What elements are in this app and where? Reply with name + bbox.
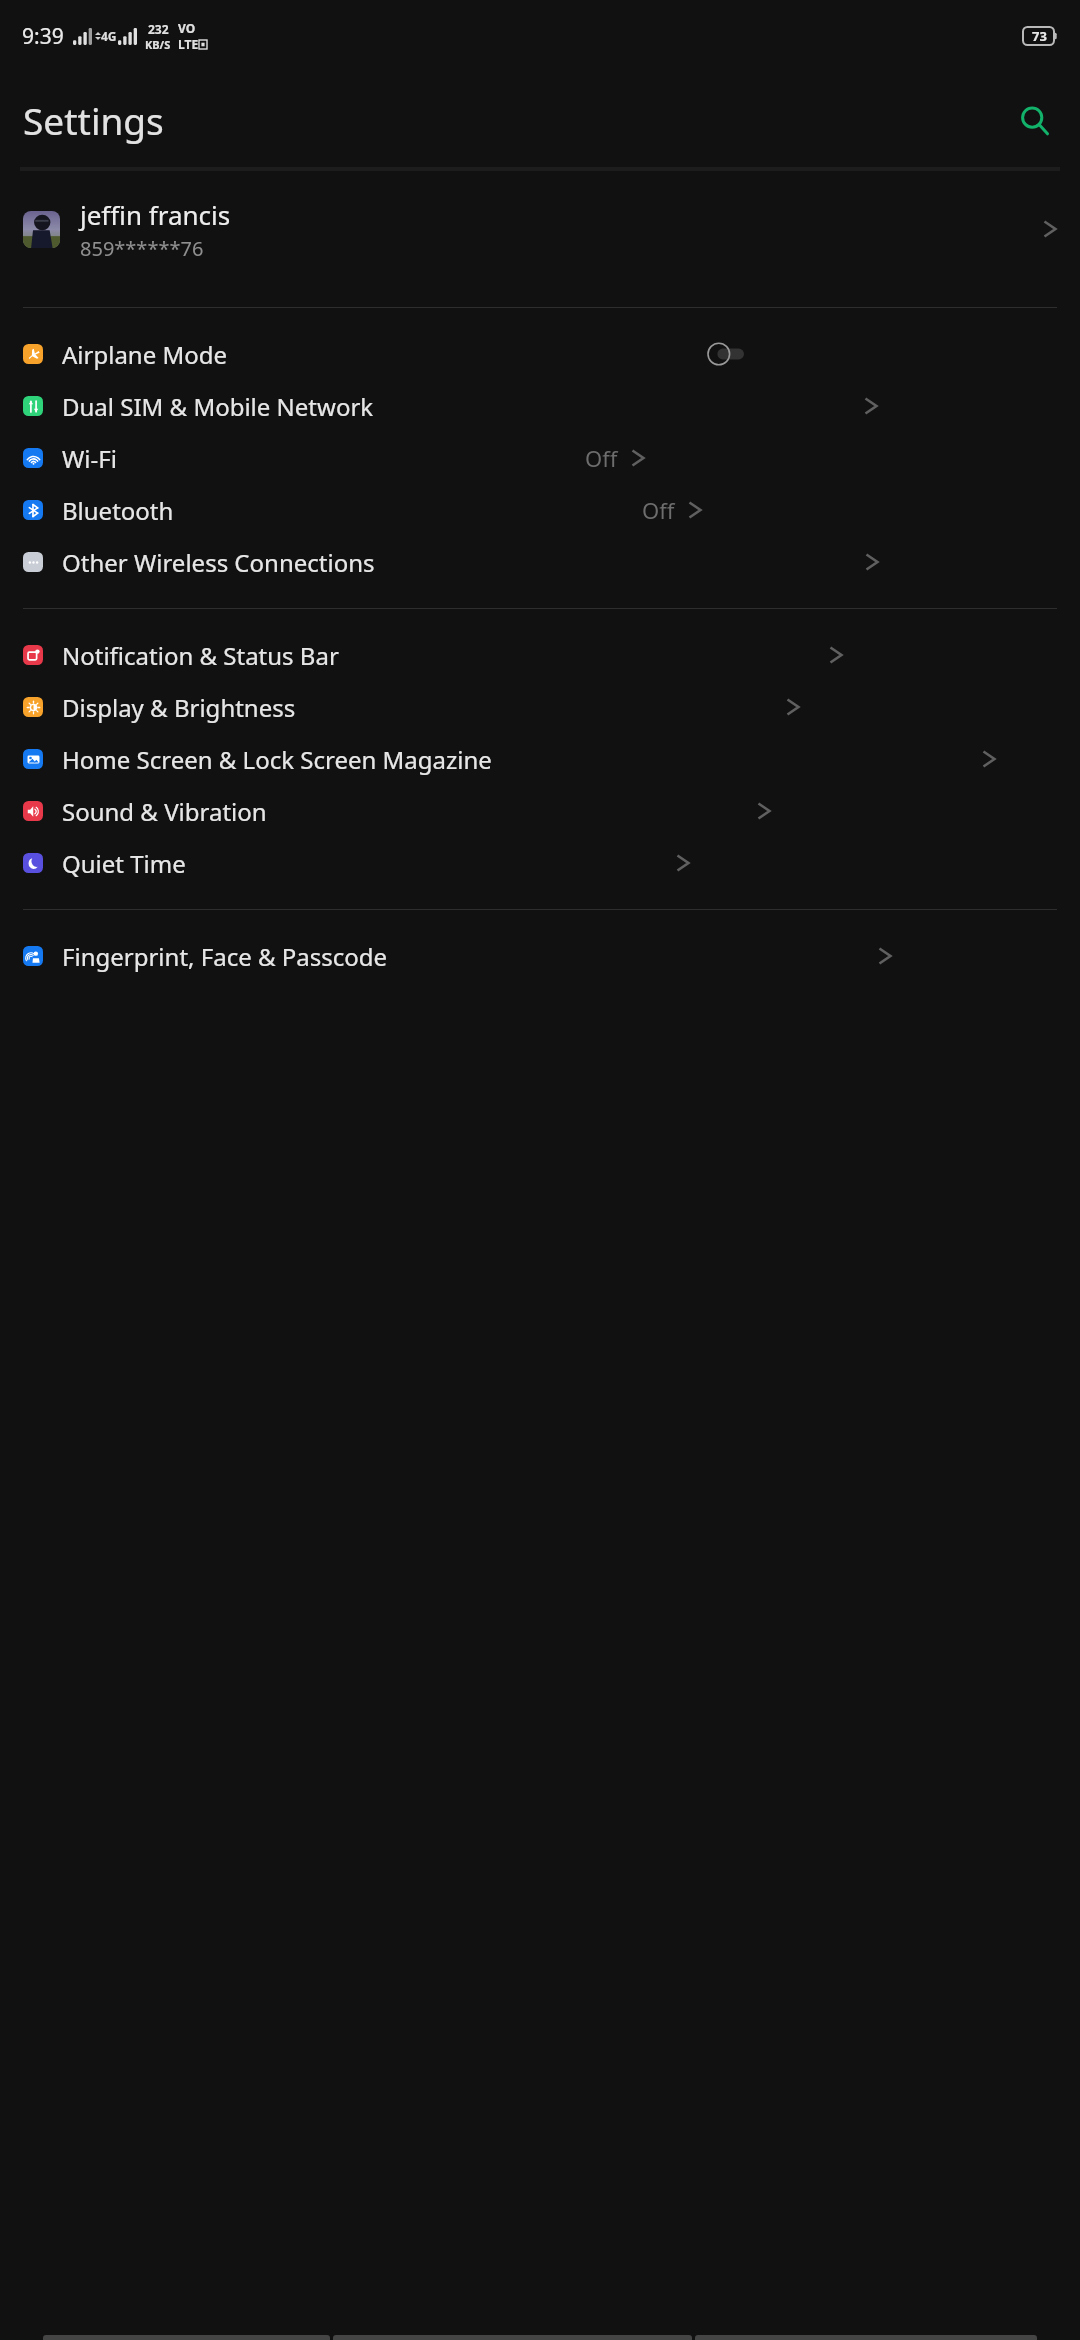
staticText: 9:39 [22,22,64,51]
button[interactable]: Other Wireless Connections [0,536,1080,588]
staticText: 232 [148,21,169,37]
button[interactable]: Sound & Vibration [0,785,1080,837]
staticText: Airplane Mode [62,338,228,371]
staticText: KB/S [145,37,171,52]
staticText: Quiet Time [62,847,186,880]
staticText: Off [585,443,618,473]
staticText: Sound & Vibration [62,795,267,828]
button[interactable]: Dual SIM & Mobile Network [0,380,1080,432]
staticText: 73 [1032,27,1047,45]
staticText: Home Screen & Lock Screen Magazine [62,743,492,776]
staticText: Off [642,495,675,525]
staticText: Wi-Fi [62,442,117,475]
staticText: VO [178,20,196,36]
button[interactable]: Airplane Mode toggle [707,342,744,366]
staticText: Other Wireless Connections [62,546,375,579]
staticText: Settings [23,95,164,145]
button[interactable]: Quiet Time [0,837,1080,889]
staticText: Notification & Status Bar [62,639,339,672]
button[interactable]: jeffin francis [0,173,1080,285]
staticText: Display & Brightness [62,691,296,724]
staticText: Dual SIM & Mobile Network [62,390,374,423]
button[interactable]: Bluetooth [0,484,1080,536]
button[interactable]: Search [1006,92,1062,148]
staticText: 4G [101,28,117,44]
staticText: LTE [178,36,199,52]
staticText: Fingerprint, Face & Passcode [62,940,388,973]
button[interactable]: Fingerprint, Face & Passcode [0,930,1080,982]
staticText: 859******76 [80,235,204,262]
button[interactable]: Notification & Status Bar [0,629,1080,681]
button[interactable]: Display & Brightness [0,681,1080,733]
button[interactable]: Airplane Mode [0,328,1080,380]
button[interactable]: Wi-Fi [0,432,1080,484]
button[interactable]: Home Screen & Lock Screen Magazine [0,733,1080,785]
staticText: jeffin francis [80,197,231,232]
staticText: Bluetooth [62,494,174,527]
